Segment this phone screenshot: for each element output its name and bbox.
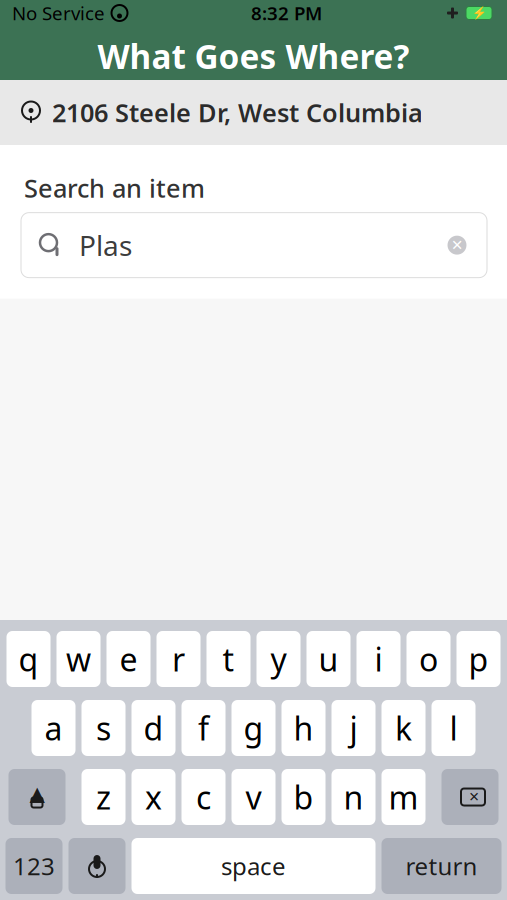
- staticText: 123: [13, 850, 55, 882]
- button[interactable]: z: [81, 769, 125, 825]
- button[interactable]: u: [306, 631, 350, 687]
- button[interactable]: q: [6, 631, 50, 687]
- button[interactable]: v: [231, 769, 275, 825]
- button[interactable]: i: [356, 631, 400, 687]
- staticText: d: [143, 707, 163, 749]
- button[interactable]: l: [431, 700, 475, 756]
- button[interactable]: g: [231, 700, 275, 756]
- staticText: e: [119, 638, 137, 680]
- staticText: No Service: [12, 1, 105, 25]
- staticText: m: [388, 776, 418, 818]
- staticText: What Goes Where?: [97, 34, 409, 78]
- button[interactable]: j: [331, 700, 375, 756]
- staticText: b: [293, 776, 313, 818]
- button[interactable]: Shift: [8, 769, 65, 825]
- button[interactable]: o: [406, 631, 450, 687]
- button[interactable]: c: [181, 769, 225, 825]
- button[interactable]: p: [456, 631, 500, 687]
- staticText: w: [66, 638, 91, 680]
- staticText: i: [374, 638, 382, 680]
- staticText: ⚡: [471, 6, 486, 20]
- staticText: t: [222, 638, 234, 680]
- staticText: v: [245, 776, 261, 818]
- staticText: r: [172, 638, 185, 680]
- button[interactable]: Delete: [441, 769, 498, 825]
- button[interactable]: b: [281, 769, 325, 825]
- staticText: Search an item: [24, 171, 205, 205]
- staticText: ✕: [468, 789, 479, 804]
- staticText: Plas: [79, 227, 132, 264]
- button[interactable]: Dictate: [68, 838, 125, 894]
- staticText: ✕: [451, 237, 463, 253]
- staticText: j: [349, 707, 357, 749]
- staticText: 2106 Steele Dr, West Columbia: [52, 96, 423, 129]
- staticText: z: [96, 776, 111, 818]
- staticText: n: [343, 776, 363, 818]
- button[interactable]: Plas: [21, 213, 487, 278]
- staticText: s: [96, 707, 111, 749]
- button[interactable]: n: [331, 769, 375, 825]
- button[interactable]: f: [181, 700, 225, 756]
- button[interactable]: w: [56, 631, 100, 687]
- button[interactable]: r: [156, 631, 200, 687]
- staticText: l: [449, 707, 457, 749]
- button[interactable]: k: [381, 700, 425, 756]
- staticText: g: [243, 707, 263, 749]
- staticText: u: [318, 638, 338, 680]
- button[interactable]: space: [131, 838, 375, 894]
- staticText: return: [405, 850, 477, 882]
- staticText: y: [270, 638, 286, 680]
- button[interactable]: 2106 Steele Dr, West Columbia: [0, 80, 507, 145]
- button[interactable]: s: [81, 700, 125, 756]
- button[interactable]: 123: [5, 838, 62, 894]
- button[interactable]: return: [381, 838, 501, 894]
- staticText: a: [44, 707, 62, 749]
- staticText: ▲: [29, 782, 44, 805]
- button[interactable]: Clear text: [444, 232, 470, 258]
- staticText: p: [468, 638, 488, 680]
- button[interactable]: a: [31, 700, 75, 756]
- button[interactable]: e: [106, 631, 150, 687]
- staticText: h: [293, 707, 313, 749]
- staticText: space: [221, 850, 286, 882]
- staticText: q: [18, 638, 38, 680]
- button[interactable]: m: [381, 769, 425, 825]
- button[interactable]: y: [256, 631, 300, 687]
- button[interactable]: h: [281, 700, 325, 756]
- staticText: k: [395, 707, 412, 749]
- staticText: c: [196, 776, 211, 818]
- button[interactable]: d: [131, 700, 175, 756]
- staticText: 8:32 PM: [251, 1, 322, 25]
- button[interactable]: t: [206, 631, 250, 687]
- staticText: f: [198, 707, 209, 749]
- staticText: x: [145, 776, 162, 818]
- staticText: o: [419, 638, 438, 680]
- button[interactable]: x: [131, 769, 175, 825]
